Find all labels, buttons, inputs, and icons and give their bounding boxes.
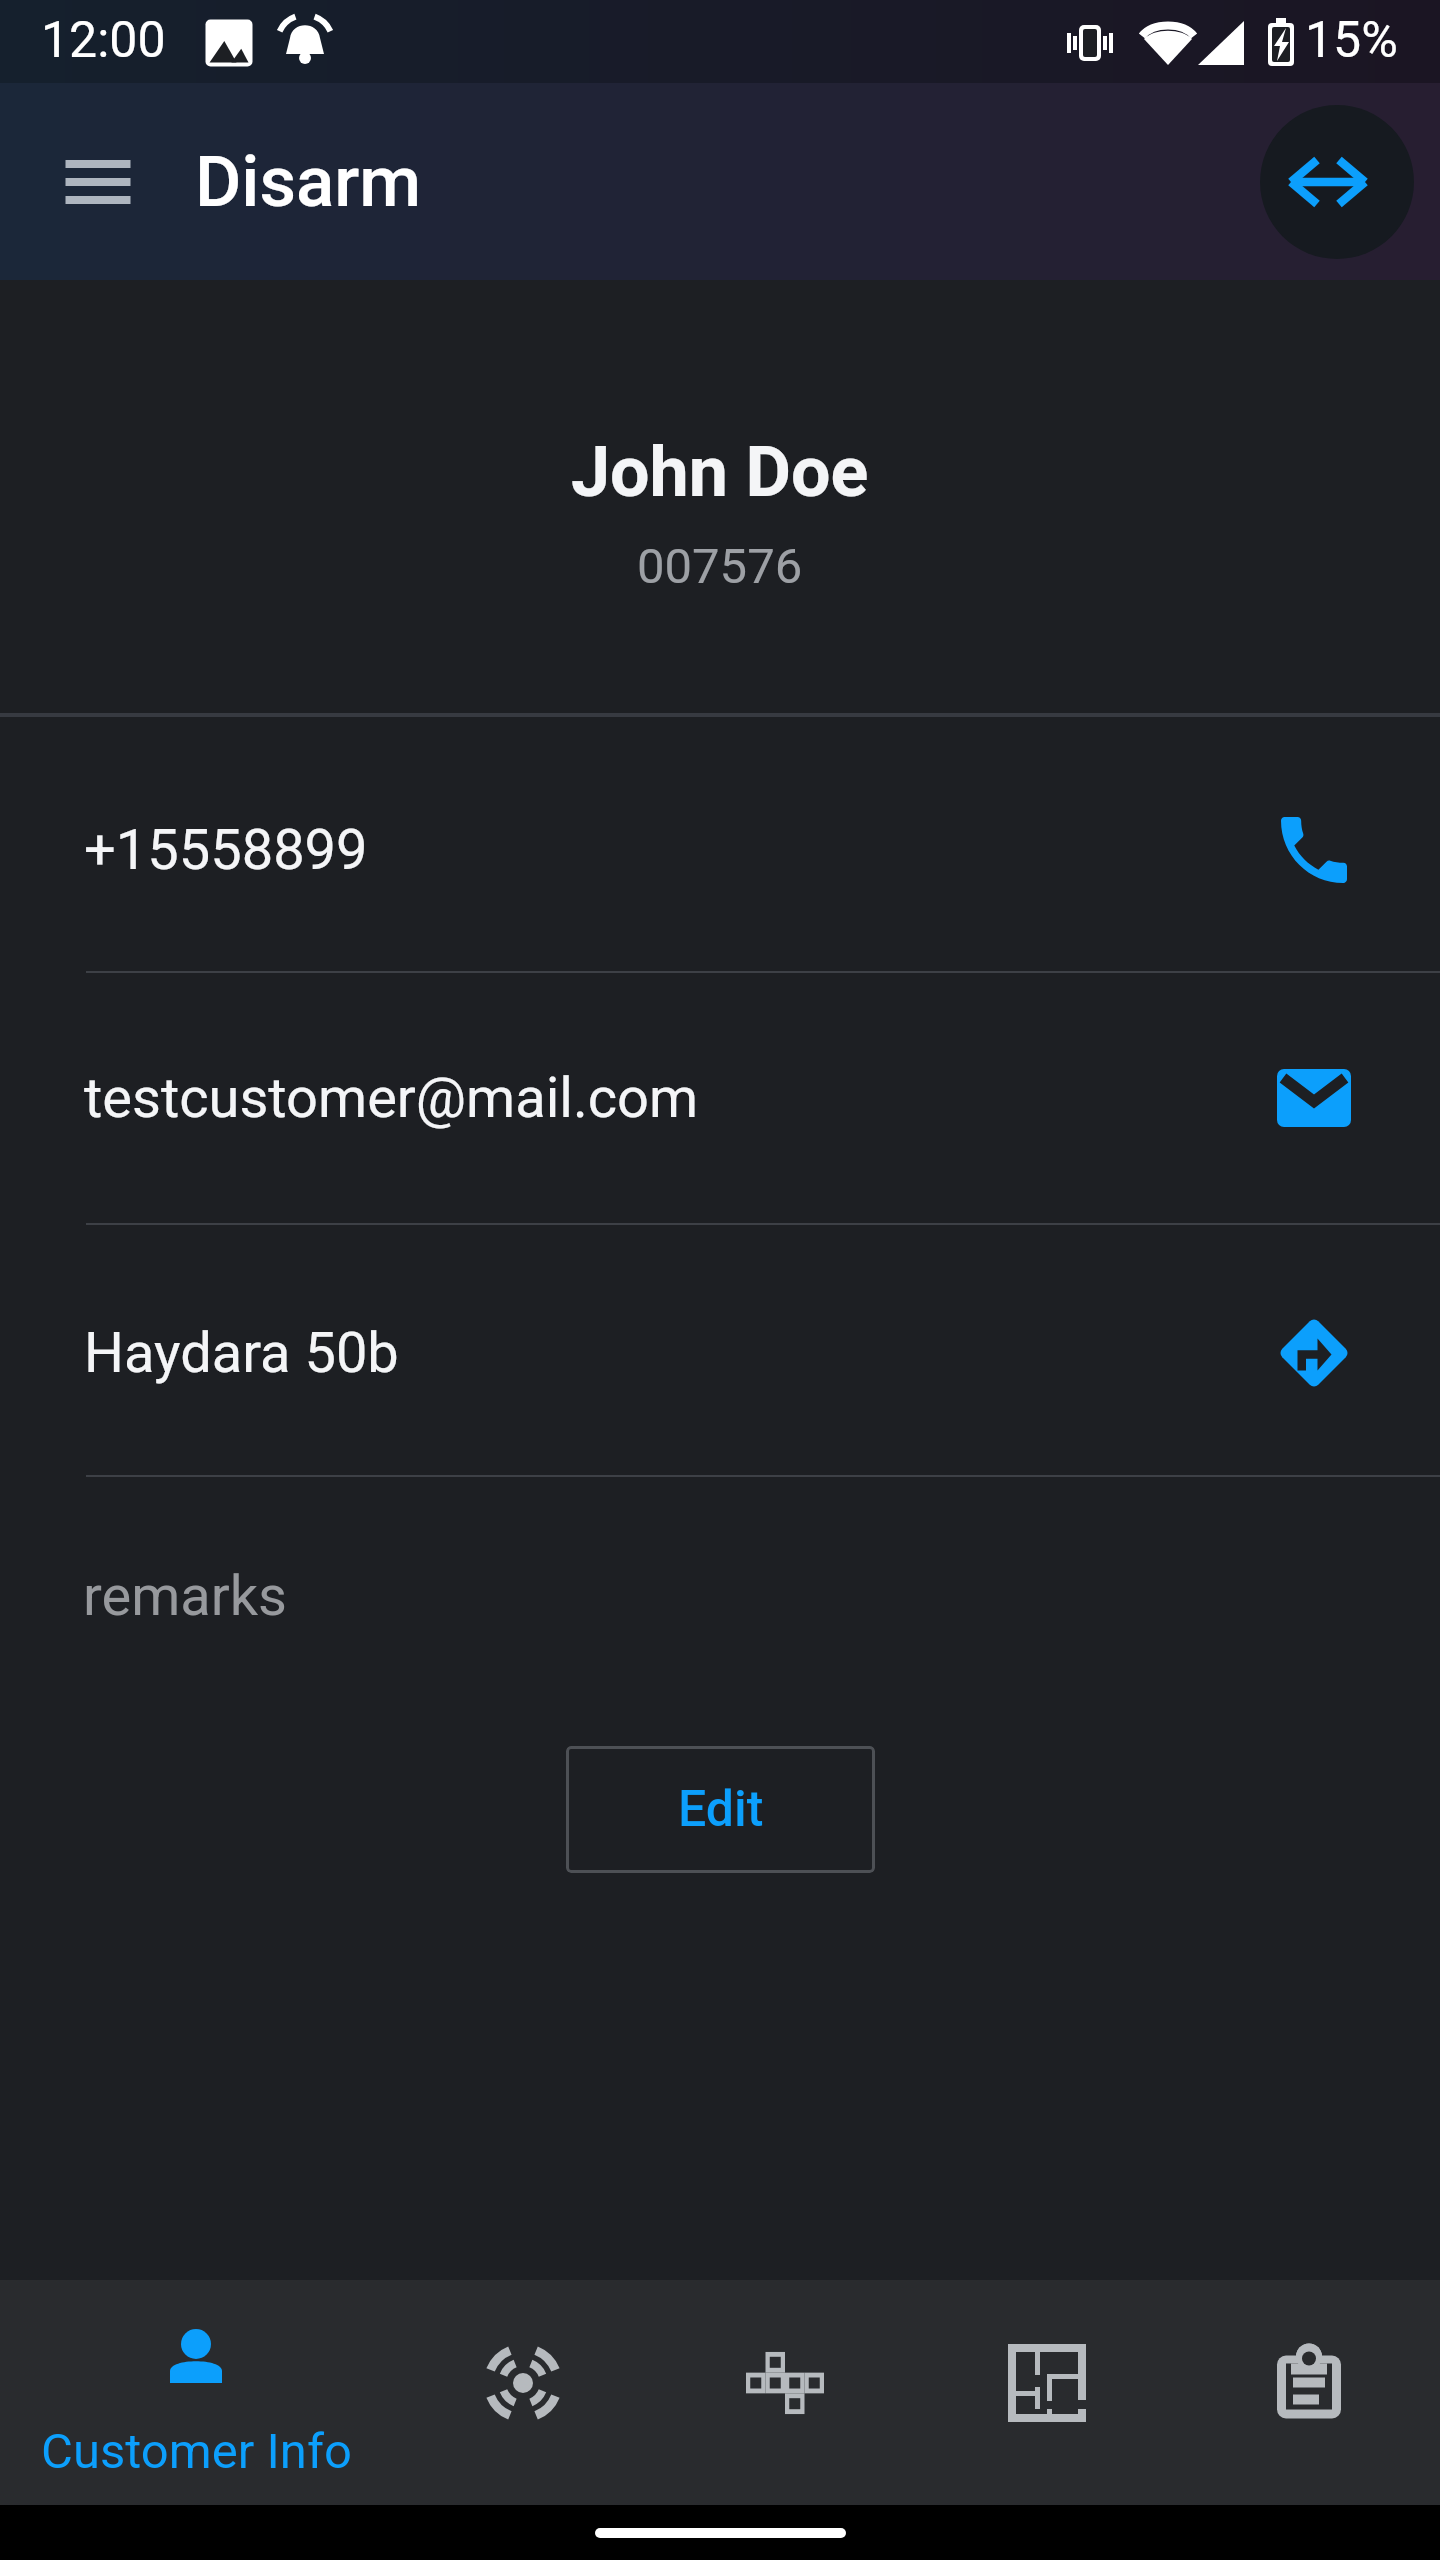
staticText: remarks <box>83 1563 287 1629</box>
button[interactable]: Floor plan tab <box>916 2280 1178 2505</box>
button[interactable]: Edit <box>566 1746 875 1873</box>
button[interactable]: Devices tab <box>654 2280 916 2505</box>
button[interactable]: Toggle compact layout <box>1260 105 1414 259</box>
staticText: +15558899 <box>84 817 1254 883</box>
staticText: John Doe <box>571 431 869 513</box>
button[interactable]: Customer Info tab <box>0 2280 392 2505</box>
button[interactable]: Get directions <box>1254 1290 1374 1410</box>
button[interactable]: testcustomer@mail.com <box>0 973 1440 1223</box>
staticText: 12:00 <box>41 11 166 70</box>
staticText: 007576 <box>637 538 803 595</box>
staticText: Disarm <box>195 140 422 223</box>
staticText: Haydara 50b <box>84 1320 1254 1386</box>
staticText: Customer Info <box>41 2423 352 2480</box>
button[interactable]: Reports tab <box>1178 2280 1440 2505</box>
button[interactable]: Sensors tab <box>392 2280 654 2505</box>
button[interactable]: Haydara 50b <box>0 1225 1440 1475</box>
button[interactable]: Call +15558899 <box>1254 784 1374 904</box>
button[interactable]: Send email <box>1254 1038 1374 1158</box>
staticText: testcustomer@mail.com <box>84 1065 1254 1131</box>
button[interactable]: +15558899 <box>0 717 1440 971</box>
staticText: 15% <box>1305 11 1398 70</box>
button[interactable]: Open navigation menu <box>38 122 158 242</box>
staticText: Edit <box>678 1780 764 1839</box>
